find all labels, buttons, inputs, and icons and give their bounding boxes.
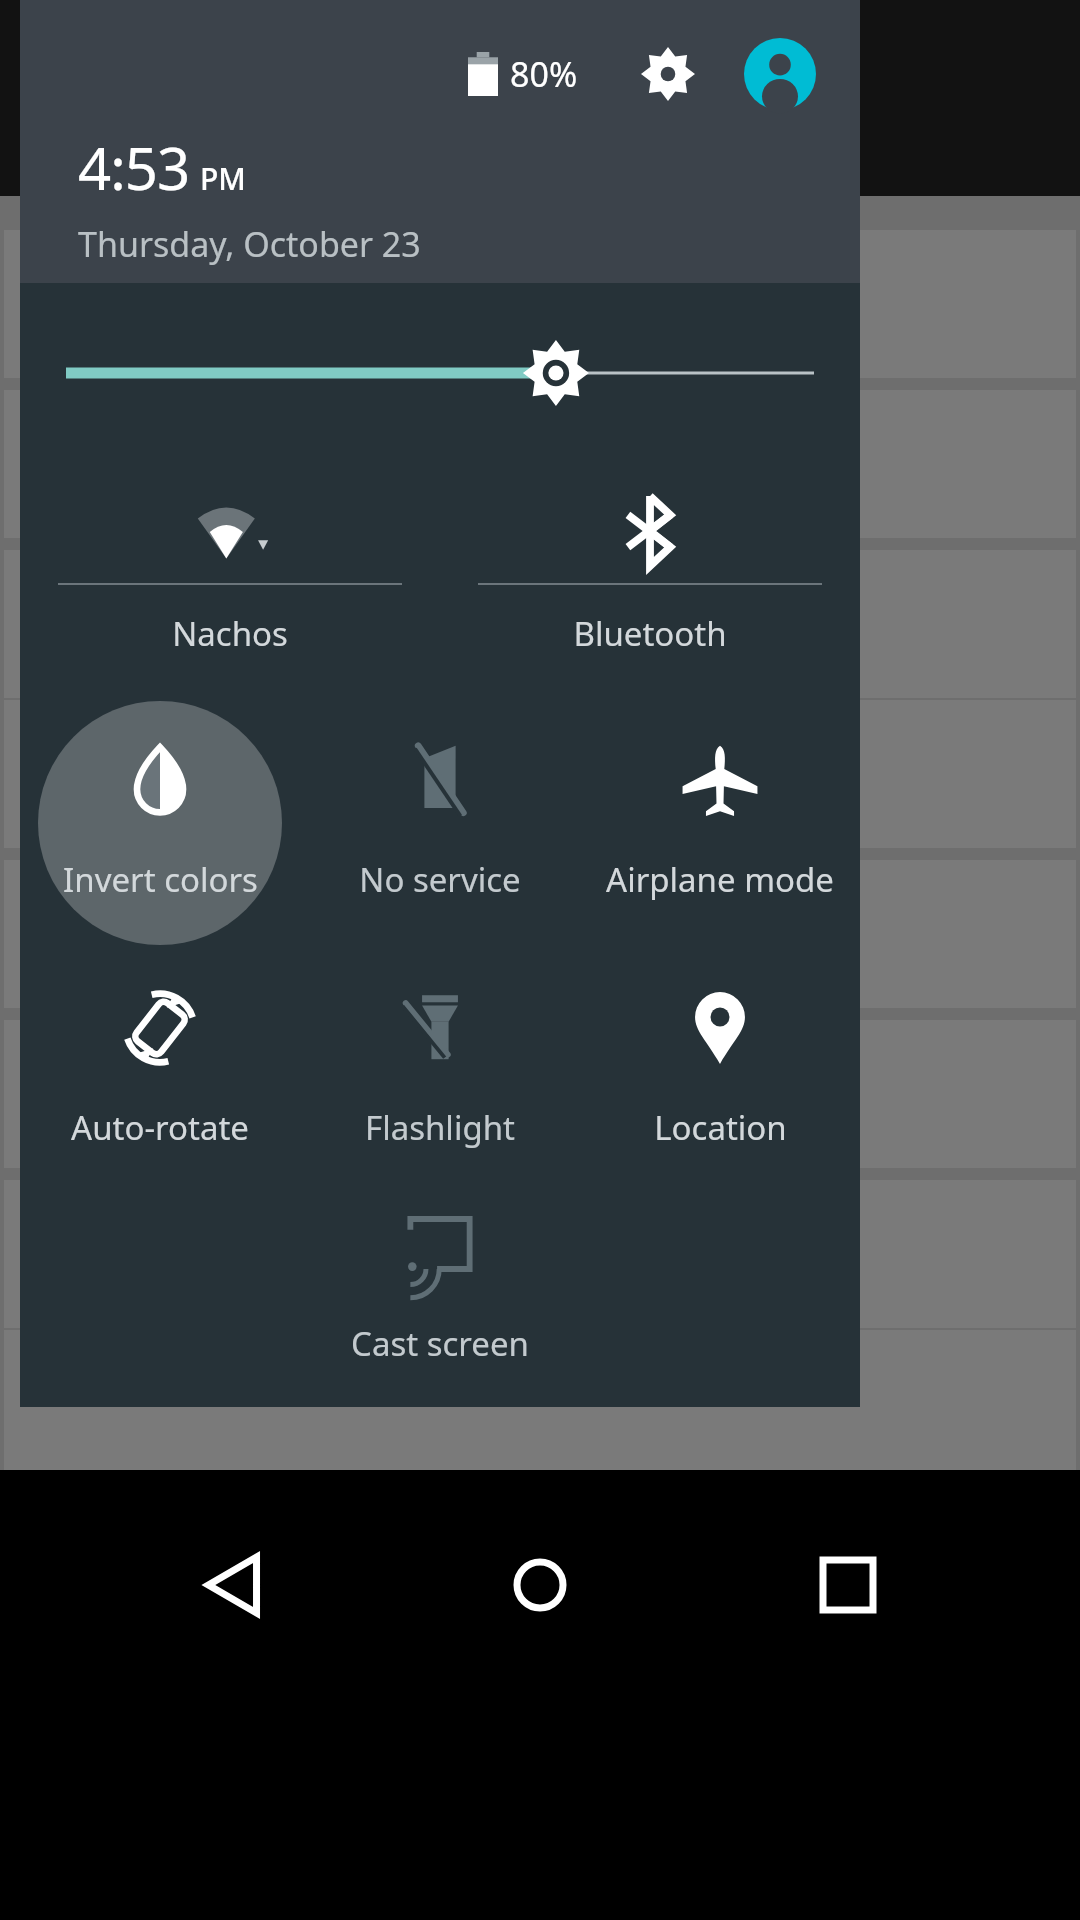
staticText: Flashlight xyxy=(365,1105,515,1150)
staticText: Bluetooth xyxy=(573,611,727,656)
button[interactable]: Home xyxy=(465,1510,615,1660)
staticText: 80% xyxy=(510,51,578,97)
button[interactable]: Back xyxy=(158,1510,308,1660)
staticText: Thursday, October 23 xyxy=(78,221,421,267)
button[interactable]: Recent apps xyxy=(773,1510,923,1660)
button[interactable]: Location xyxy=(580,943,860,1159)
button[interactable]: Auto-rotate xyxy=(20,943,300,1159)
button[interactable]: Battery 80 percent xyxy=(462,43,584,105)
staticText: Auto-rotate xyxy=(71,1105,249,1150)
button[interactable]: Brightness xyxy=(20,283,860,463)
staticText: Airplane mode xyxy=(606,857,834,902)
button[interactable]: Settings xyxy=(624,30,712,118)
staticText: Nachos xyxy=(172,611,288,656)
button[interactable]: Bluetooth xyxy=(440,463,860,695)
button[interactable]: Cast screen xyxy=(300,1159,580,1375)
button[interactable]: No service xyxy=(300,695,580,943)
button[interactable]: Flashlight xyxy=(300,943,580,1159)
staticText: Location xyxy=(654,1105,787,1150)
button[interactable]: 4:53 xyxy=(78,128,246,207)
button[interactable]: User profile xyxy=(736,30,824,118)
staticText: PM xyxy=(200,158,246,199)
button[interactable]: Wi-Fi Nachos xyxy=(20,463,440,695)
button[interactable]: Invert colors xyxy=(20,695,300,943)
staticText: Cast screen xyxy=(351,1321,529,1366)
button[interactable]: Airplane mode xyxy=(580,695,860,943)
staticText: No service xyxy=(359,857,521,902)
staticText: Invert colors xyxy=(63,857,258,902)
staticText: 4:53 xyxy=(78,128,190,207)
